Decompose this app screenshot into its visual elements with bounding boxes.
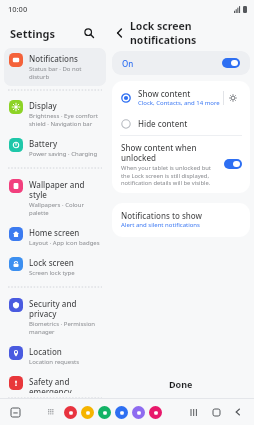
staticText: On	[122, 58, 134, 69]
button[interactable]: App 4	[132, 406, 145, 419]
button[interactable]: Battery	[4, 133, 106, 163]
button[interactable]: All apps	[44, 405, 58, 419]
button[interactable]: Toggle	[224, 159, 242, 169]
staticText: Security and privacy	[29, 298, 102, 319]
button[interactable]: App 2	[98, 406, 111, 419]
button[interactable]: App 1	[81, 406, 94, 419]
staticText: Settings	[10, 26, 56, 41]
staticText: Notifications to show	[121, 210, 203, 221]
staticText: Location requests	[29, 358, 80, 366]
staticText: Clock, Contacts, and 14 more	[138, 99, 220, 107]
staticText: Wallpapers · Colour palette	[29, 201, 102, 217]
button[interactable]: App 5	[149, 406, 162, 419]
button[interactable]: Taskbar	[8, 405, 22, 419]
staticText: Location	[29, 346, 62, 357]
button[interactable]: Back	[110, 23, 130, 43]
button[interactable]: On	[112, 51, 250, 75]
staticText: When your tablet is unlocked but the Loc…	[121, 164, 218, 186]
staticText: Battery	[29, 138, 58, 149]
button[interactable]: App 0	[64, 406, 77, 419]
button[interactable]: Settings	[224, 89, 242, 107]
button[interactable]: Search	[80, 24, 98, 42]
button[interactable]: Hide content	[112, 113, 250, 135]
staticText: Home screen	[29, 227, 80, 238]
button[interactable]: Toggle	[222, 58, 240, 68]
staticText: Brightness · Eye comfort shield · Naviga…	[29, 112, 102, 128]
button[interactable]: Wallpaper and style	[4, 174, 106, 222]
button[interactable]: Home screen	[4, 222, 106, 252]
staticText: Wallpaper and style	[29, 179, 102, 200]
staticText: Safety and emergency	[29, 376, 102, 393]
staticText: Show content	[138, 88, 191, 99]
staticText: Display	[29, 100, 57, 111]
button[interactable]: Recents	[186, 404, 202, 420]
button[interactable]: Security and privacy	[4, 293, 106, 341]
button[interactable]: Show content	[112, 81, 250, 113]
button[interactable]: Show content when unlocked	[112, 136, 250, 193]
button[interactable]: Display	[4, 95, 106, 133]
button[interactable]: Location	[4, 341, 106, 371]
staticText: Lock screen notifications	[130, 19, 254, 47]
button[interactable]: Safety and emergency	[4, 371, 106, 398]
button[interactable]: App 3	[115, 406, 128, 419]
staticText: Power saving · Charging	[29, 150, 98, 158]
staticText: Layout · App icon badges	[29, 239, 100, 247]
staticText: Alert and silent notifications	[121, 221, 200, 229]
staticText: Notifications	[29, 53, 78, 64]
staticText: Show content when unlocked	[121, 142, 218, 163]
staticText: Done	[169, 378, 193, 390]
button[interactable]: Home	[208, 404, 224, 420]
button[interactable]: Back	[230, 404, 246, 420]
staticText: Status bar · Do not disturb	[29, 65, 102, 81]
staticText: 10:00	[8, 4, 28, 14]
staticText: Lock screen	[29, 257, 74, 268]
staticText: Hide content	[138, 118, 188, 129]
button[interactable]: Lock screen	[4, 252, 106, 282]
button[interactable]: Notifications to show	[112, 203, 250, 237]
button[interactable]: Notifications	[4, 48, 106, 86]
staticText: Screen lock type	[29, 269, 75, 277]
staticText: Biometrics · Permission manager	[29, 320, 102, 336]
button[interactable]: Done	[157, 374, 205, 394]
